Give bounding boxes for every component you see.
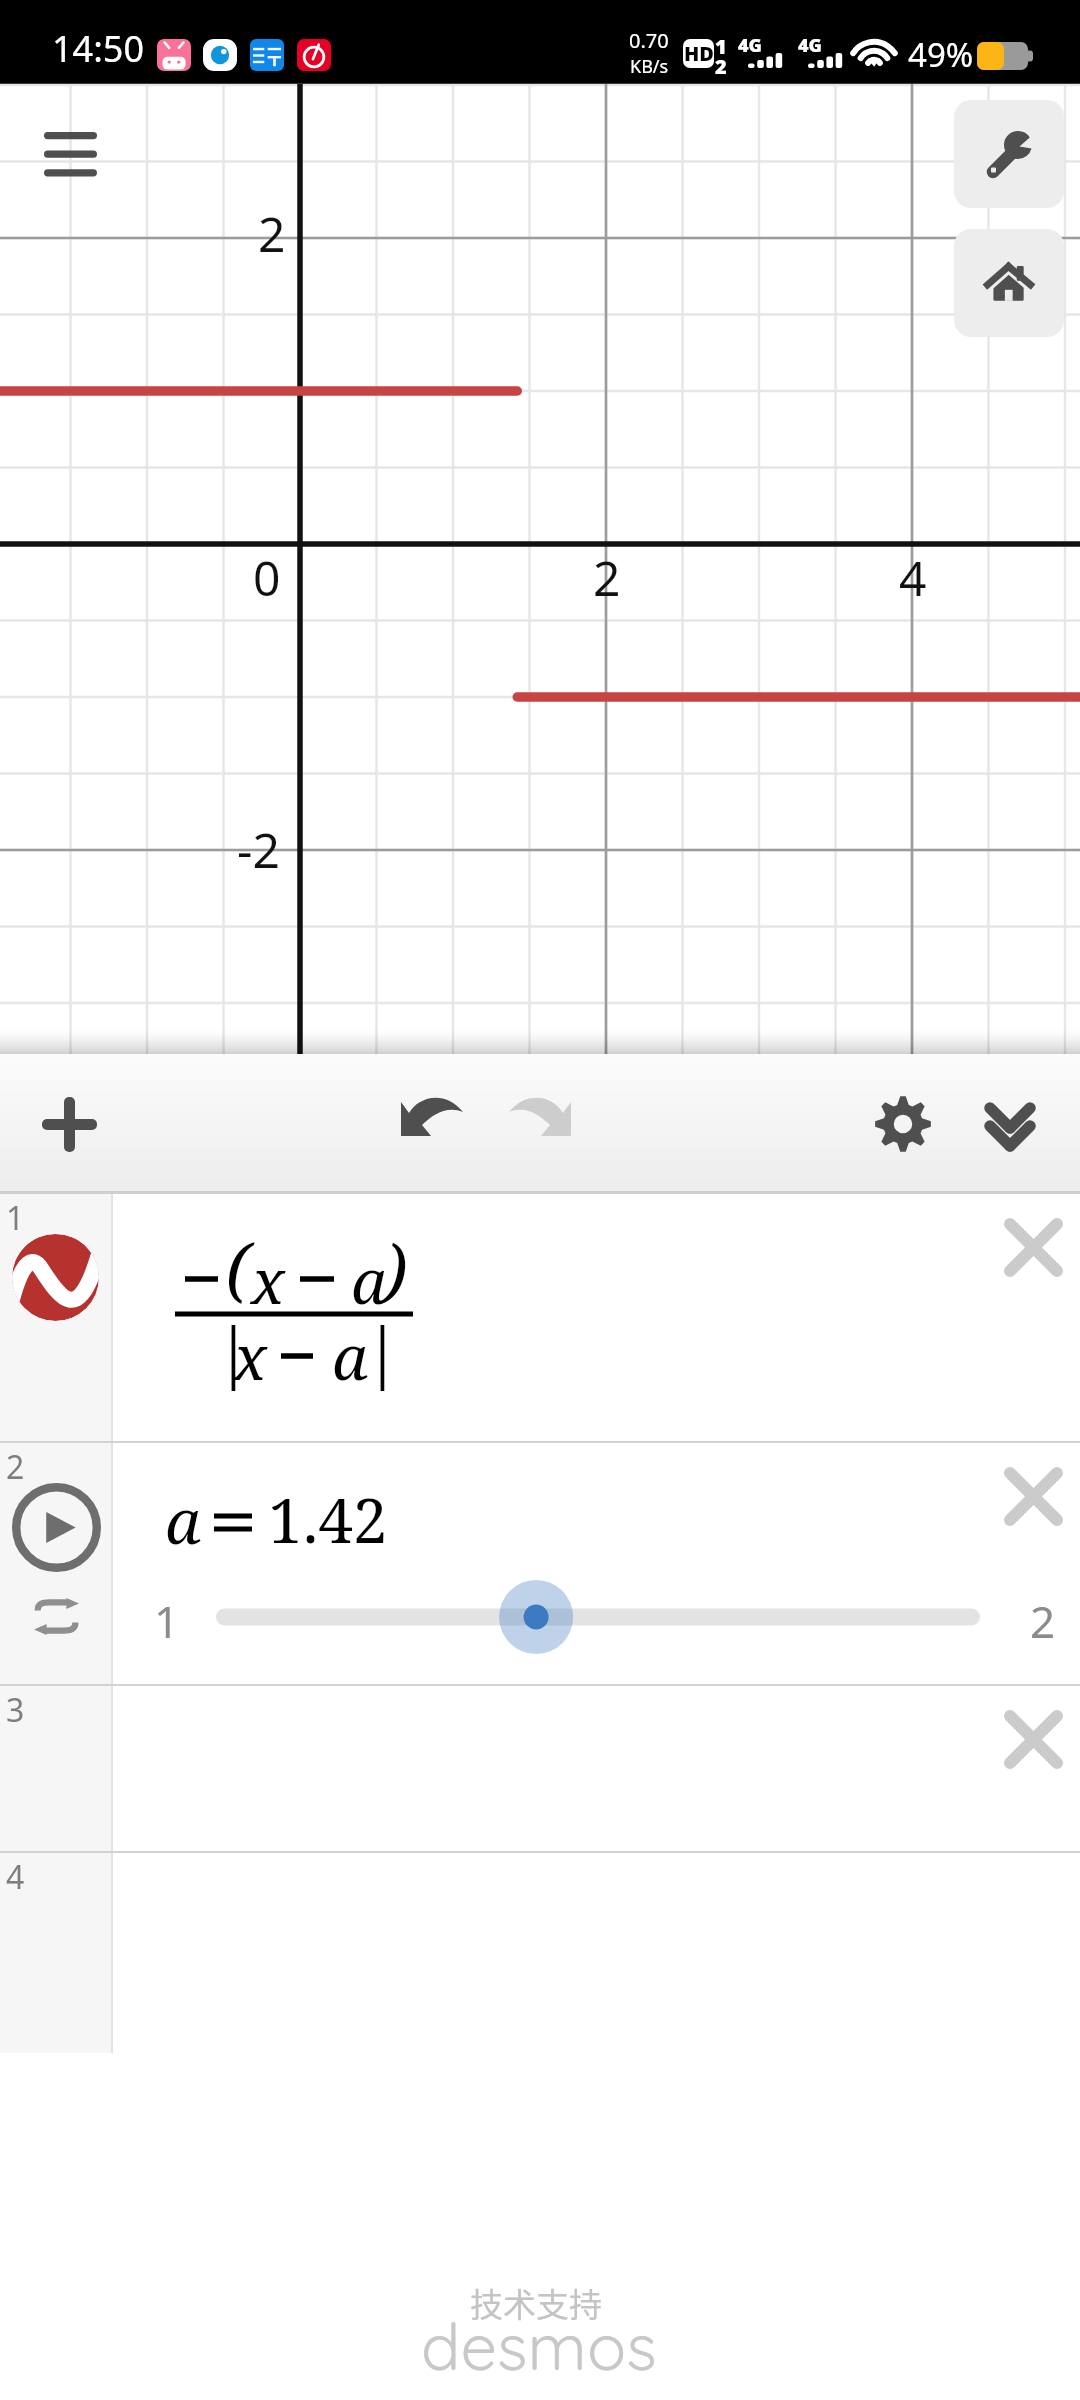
- staticText: |: [364, 1304, 401, 1394]
- button[interactable]: Menu: [22, 106, 118, 202]
- button[interactable]: Collapse keypad: [960, 1073, 1060, 1173]
- staticText: a: [165, 1478, 201, 1562]
- staticText: 0.70: [629, 27, 669, 54]
- staticText: x: [233, 1314, 267, 1398]
- staticText: 4: [6, 1855, 25, 1899]
- staticText: KB/s: [630, 54, 669, 79]
- staticText: 1: [6, 1196, 25, 1240]
- button[interactable]: 2: [0, 1443, 113, 1684]
- staticText: 1.42: [268, 1477, 388, 1561]
- button[interactable]: 4: [0, 1853, 113, 2053]
- staticText: |: [215, 1304, 252, 1394]
- staticText: 14:50: [52, 24, 145, 73]
- button[interactable]: Tools: [954, 100, 1064, 208]
- staticText: 2: [715, 53, 727, 80]
- staticText: 2: [593, 545, 621, 610]
- button[interactable]: Add expression: [19, 1074, 119, 1174]
- button[interactable]: Settings: [853, 1074, 953, 1174]
- staticText: 4: [899, 545, 927, 610]
- staticText: 1: [715, 33, 727, 60]
- staticText: 2: [1030, 1591, 1056, 1651]
- staticText: 49%: [908, 32, 974, 77]
- button[interactable]: Undo: [382, 1069, 482, 1169]
- staticText: 1: [154, 1591, 180, 1651]
- button[interactable]: Redo: [490, 1069, 590, 1169]
- staticText: x: [251, 1238, 285, 1322]
- staticText: HD: [684, 40, 714, 67]
- button[interactable]: Delete expression: [113, 1686, 1080, 1851]
- button[interactable]: Delete expression: [988, 1202, 1078, 1292]
- staticText: 0: [253, 545, 281, 610]
- staticText: 4G: [798, 33, 822, 58]
- staticText: 4G: [738, 33, 762, 58]
- staticText: 技术支持: [470, 2279, 602, 2327]
- staticText: a: [351, 1238, 387, 1322]
- button[interactable]: Home: [954, 229, 1064, 337]
- staticText: -2: [237, 817, 280, 882]
- staticText: 2: [6, 1445, 25, 1489]
- button[interactable]: a: [113, 1443, 1080, 1684]
- button[interactable]: 1: [0, 1194, 113, 1441]
- staticText: desmos: [421, 2305, 657, 2386]
- staticText: 2: [258, 201, 286, 266]
- button[interactable]: Delete expression: [988, 1694, 1078, 1784]
- staticText: a: [332, 1314, 368, 1398]
- staticText: 3: [6, 1688, 25, 1732]
- staticText: (: [226, 1220, 251, 1315]
- button[interactable]: Delete expression: [988, 1451, 1078, 1541]
- button[interactable]: 3: [0, 1686, 113, 1851]
- button[interactable]: (: [113, 1194, 1080, 1441]
- staticText: ): [383, 1220, 408, 1315]
